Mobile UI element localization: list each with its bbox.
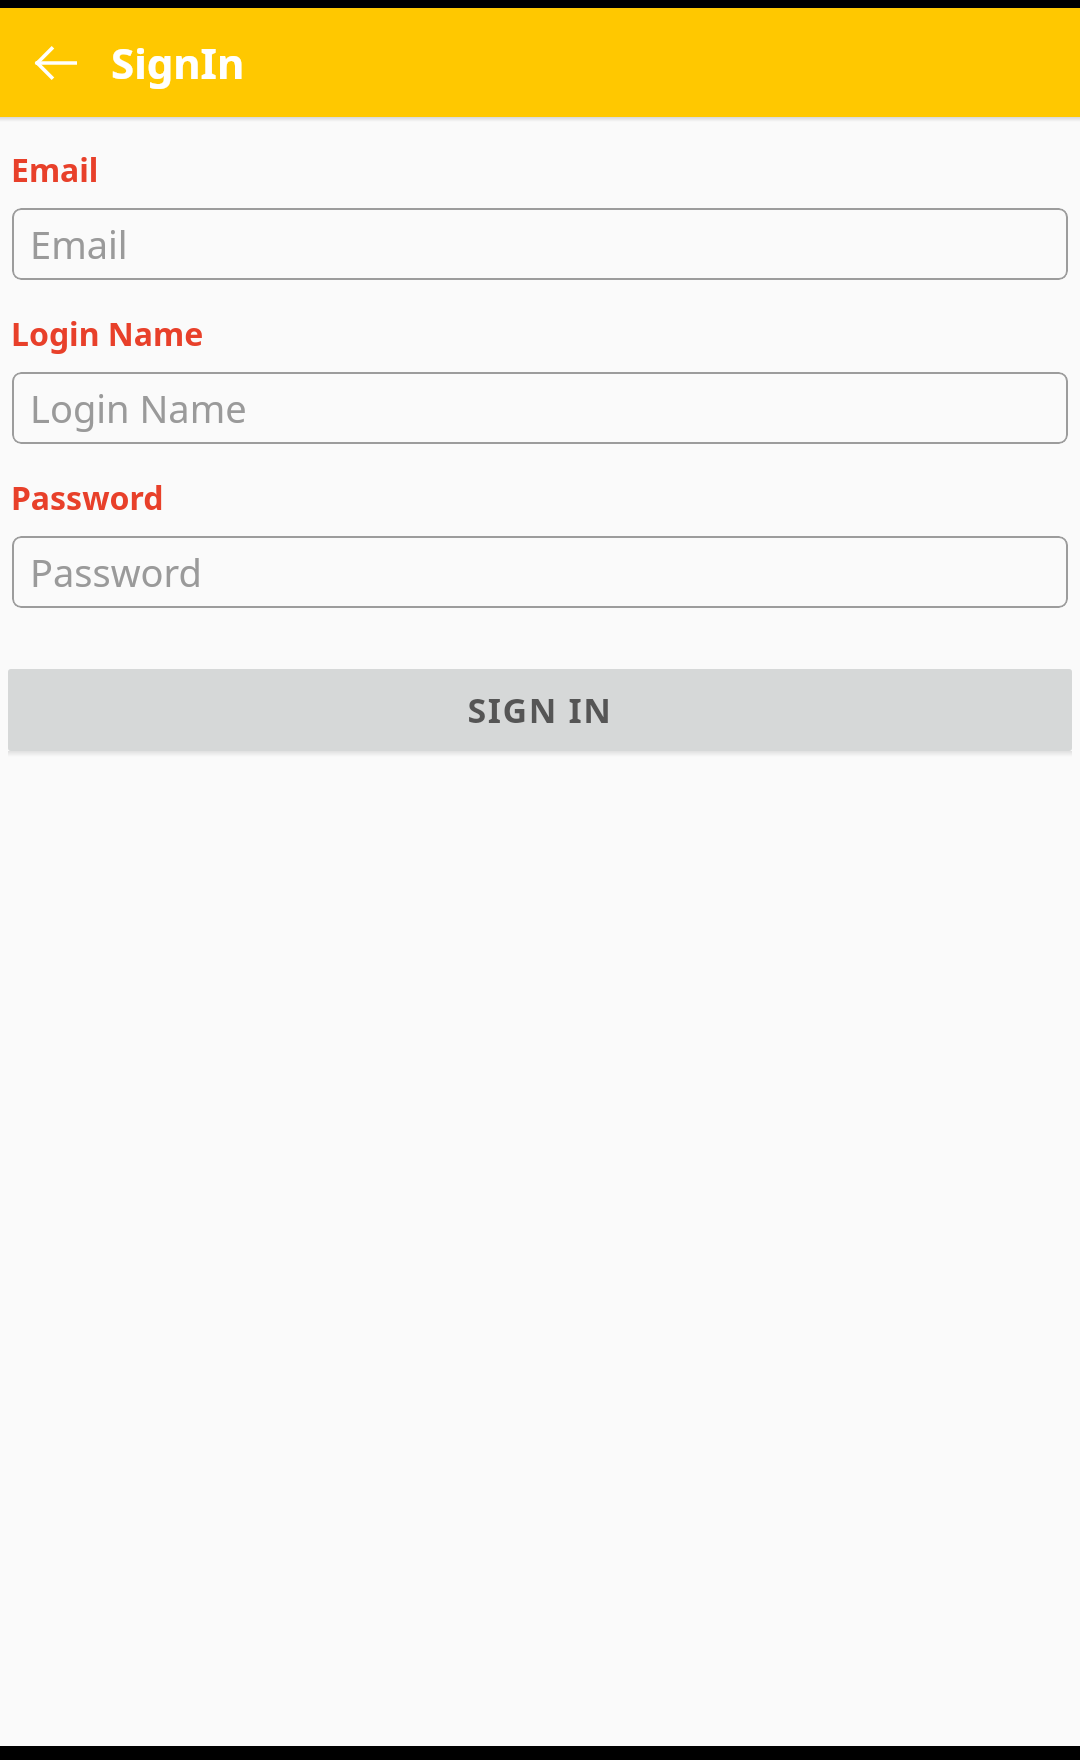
staticText: Email [11,148,99,192]
button[interactable]: Back [22,29,90,97]
staticText: Login Name [30,382,247,434]
button[interactable]: Password [12,536,1068,608]
button[interactable]: SIGN IN [8,669,1072,751]
button[interactable]: Login Name [12,372,1068,444]
staticText: Password [30,546,202,598]
button[interactable]: Email [12,208,1068,280]
staticText: SIGN IN [467,687,613,733]
staticText: Login Name [11,312,204,356]
staticText: SignIn [111,34,245,91]
staticText: Email [30,218,128,270]
staticText: Password [11,476,164,520]
